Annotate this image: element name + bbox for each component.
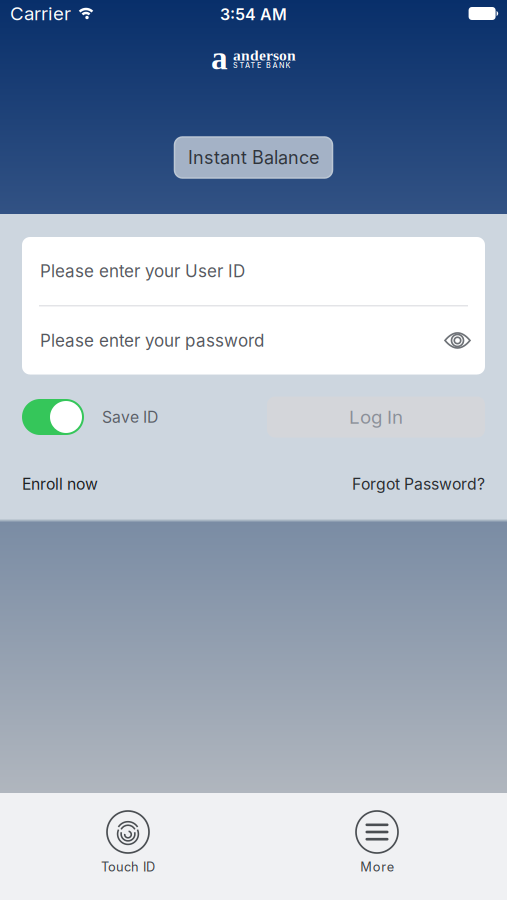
staticText: Instant Balance	[188, 147, 319, 168]
button[interactable]: Please enter your User ID	[22, 237, 485, 305]
staticText: Touch ID	[101, 859, 155, 874]
staticText: Forgot Password?	[352, 474, 485, 493]
staticText: anderson	[233, 46, 296, 64]
button[interactable]: More	[356, 793, 398, 874]
button[interactable]: Save ID	[22, 399, 84, 435]
staticText: Enroll now	[22, 474, 98, 493]
staticText: Please enter your password	[40, 330, 264, 351]
button[interactable]: Log In	[267, 396, 485, 437]
staticText: More	[360, 859, 394, 874]
staticText: Log In	[349, 406, 403, 428]
button[interactable]: Instant Balance	[174, 137, 332, 178]
button[interactable]: Please enter your password	[22, 306, 485, 374]
button[interactable]: Show password	[444, 331, 471, 349]
staticText: Save ID	[102, 407, 158, 426]
button[interactable]: Forgot Password?	[352, 474, 485, 493]
button[interactable]: Enroll now	[22, 474, 98, 493]
staticText: 3:54 AM	[220, 5, 287, 24]
staticText: a	[211, 39, 228, 76]
button[interactable]: Touch ID	[101, 793, 155, 874]
staticText: Carrier	[10, 2, 71, 25]
staticText: STATE BANK	[233, 61, 290, 70]
staticText: Please enter your User ID	[40, 261, 245, 281]
